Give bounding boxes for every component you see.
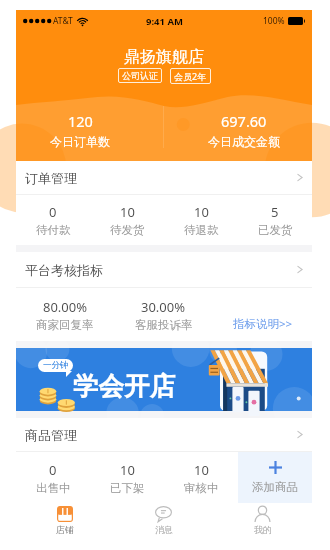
staticText: 0 (49, 461, 57, 479)
staticText: 订单管理 (25, 170, 77, 186)
staticText: 9:41 AM (146, 15, 183, 28)
staticText: 30.00% (141, 298, 186, 316)
staticText: 0 (49, 203, 57, 221)
button[interactable]: 10 (164, 452, 238, 503)
button[interactable]: 30.00% (114, 288, 213, 341)
staticText: 待付款 (36, 223, 71, 237)
staticText: 出售中 (36, 481, 71, 495)
button[interactable]: 添加商品 (238, 452, 312, 503)
button[interactable]: 商品管理 (16, 418, 312, 451)
button[interactable]: 订单管理 (16, 161, 312, 194)
staticText: 已下架 (110, 481, 145, 495)
staticText: 一分钟 (43, 360, 69, 371)
staticText: 添加商品 (252, 480, 298, 494)
button[interactable]: 0 (16, 452, 90, 503)
button[interactable]: 平台考核指标 (16, 252, 312, 287)
staticText: 鼎扬旗舰店 (124, 47, 204, 67)
button[interactable]: 5 (238, 195, 312, 245)
button[interactable]: 指标说明>> (230, 313, 296, 335)
button[interactable]: 消息 (114, 503, 213, 538)
staticText: 10 (194, 461, 209, 479)
staticText: 商品管理 (25, 427, 77, 443)
staticText: AT&T (53, 15, 73, 27)
button[interactable]: 10 (164, 195, 238, 245)
staticText: 5 (271, 203, 279, 221)
button[interactable]: 我的 (213, 503, 312, 538)
staticText: 待发货 (110, 223, 145, 237)
staticText: 今日成交金额 (208, 134, 280, 149)
staticText: 商家回复率 (36, 318, 94, 332)
button[interactable]: 店铺 (16, 503, 114, 538)
staticText: 学会开店 (73, 370, 175, 402)
button[interactable]: 10 (90, 452, 164, 503)
staticText: 697.60 (221, 111, 267, 131)
staticText: 10 (194, 203, 209, 221)
staticText: 120 (68, 111, 93, 131)
staticText: 今日订单数 (50, 134, 110, 149)
staticText: 100% (263, 15, 285, 27)
staticText: 消息 (155, 524, 173, 535)
button[interactable]: 0 (16, 195, 90, 245)
staticText: 审核中 (184, 481, 219, 495)
staticText: 店铺 (56, 524, 74, 535)
button[interactable]: 10 (90, 195, 164, 245)
staticText: 待退款 (184, 223, 219, 237)
staticText: 我的 (254, 524, 272, 535)
button[interactable]: 80.00% (16, 288, 114, 341)
staticText: 10 (120, 461, 135, 479)
staticText: 指标说明>> (233, 316, 293, 332)
staticText: 已发货 (258, 223, 293, 237)
staticText: 客服投诉率 (135, 318, 193, 332)
staticText: 10 (120, 203, 135, 221)
staticText: 公司认证 (122, 70, 158, 81)
button[interactable]: 一分钟 (16, 348, 312, 411)
staticText: 会员2年 (174, 70, 207, 82)
staticText: 平台考核指标 (25, 262, 103, 278)
staticText: 80.00% (43, 298, 88, 316)
